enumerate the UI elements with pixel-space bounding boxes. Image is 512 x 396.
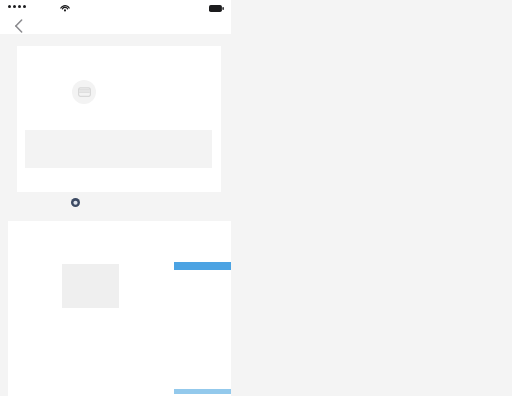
button[interactable]: Back	[8, 16, 28, 36]
button[interactable]: Emoji	[71, 198, 80, 207]
button[interactable]: Store	[72, 80, 96, 104]
